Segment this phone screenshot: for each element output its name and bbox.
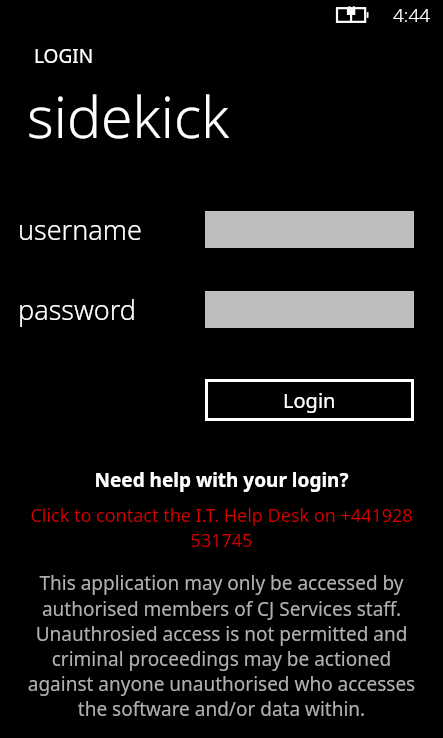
button[interactable]: Login bbox=[205, 379, 414, 421]
staticText: LOGIN bbox=[34, 43, 94, 69]
staticText: This application may only be accessed by… bbox=[18, 570, 425, 721]
staticText: sidekick bbox=[27, 77, 230, 155]
staticText: 4:44 bbox=[393, 2, 431, 28]
staticText: Click to contact the I.T. Help Desk on +… bbox=[0, 503, 443, 553]
staticText: username bbox=[18, 211, 142, 248]
staticText: Login bbox=[283, 387, 336, 414]
staticText: password bbox=[18, 291, 136, 328]
button[interactable]: Click to contact the I.T. Help Desk on +… bbox=[0, 503, 443, 553]
staticText: Need help with your login? bbox=[0, 467, 443, 493]
